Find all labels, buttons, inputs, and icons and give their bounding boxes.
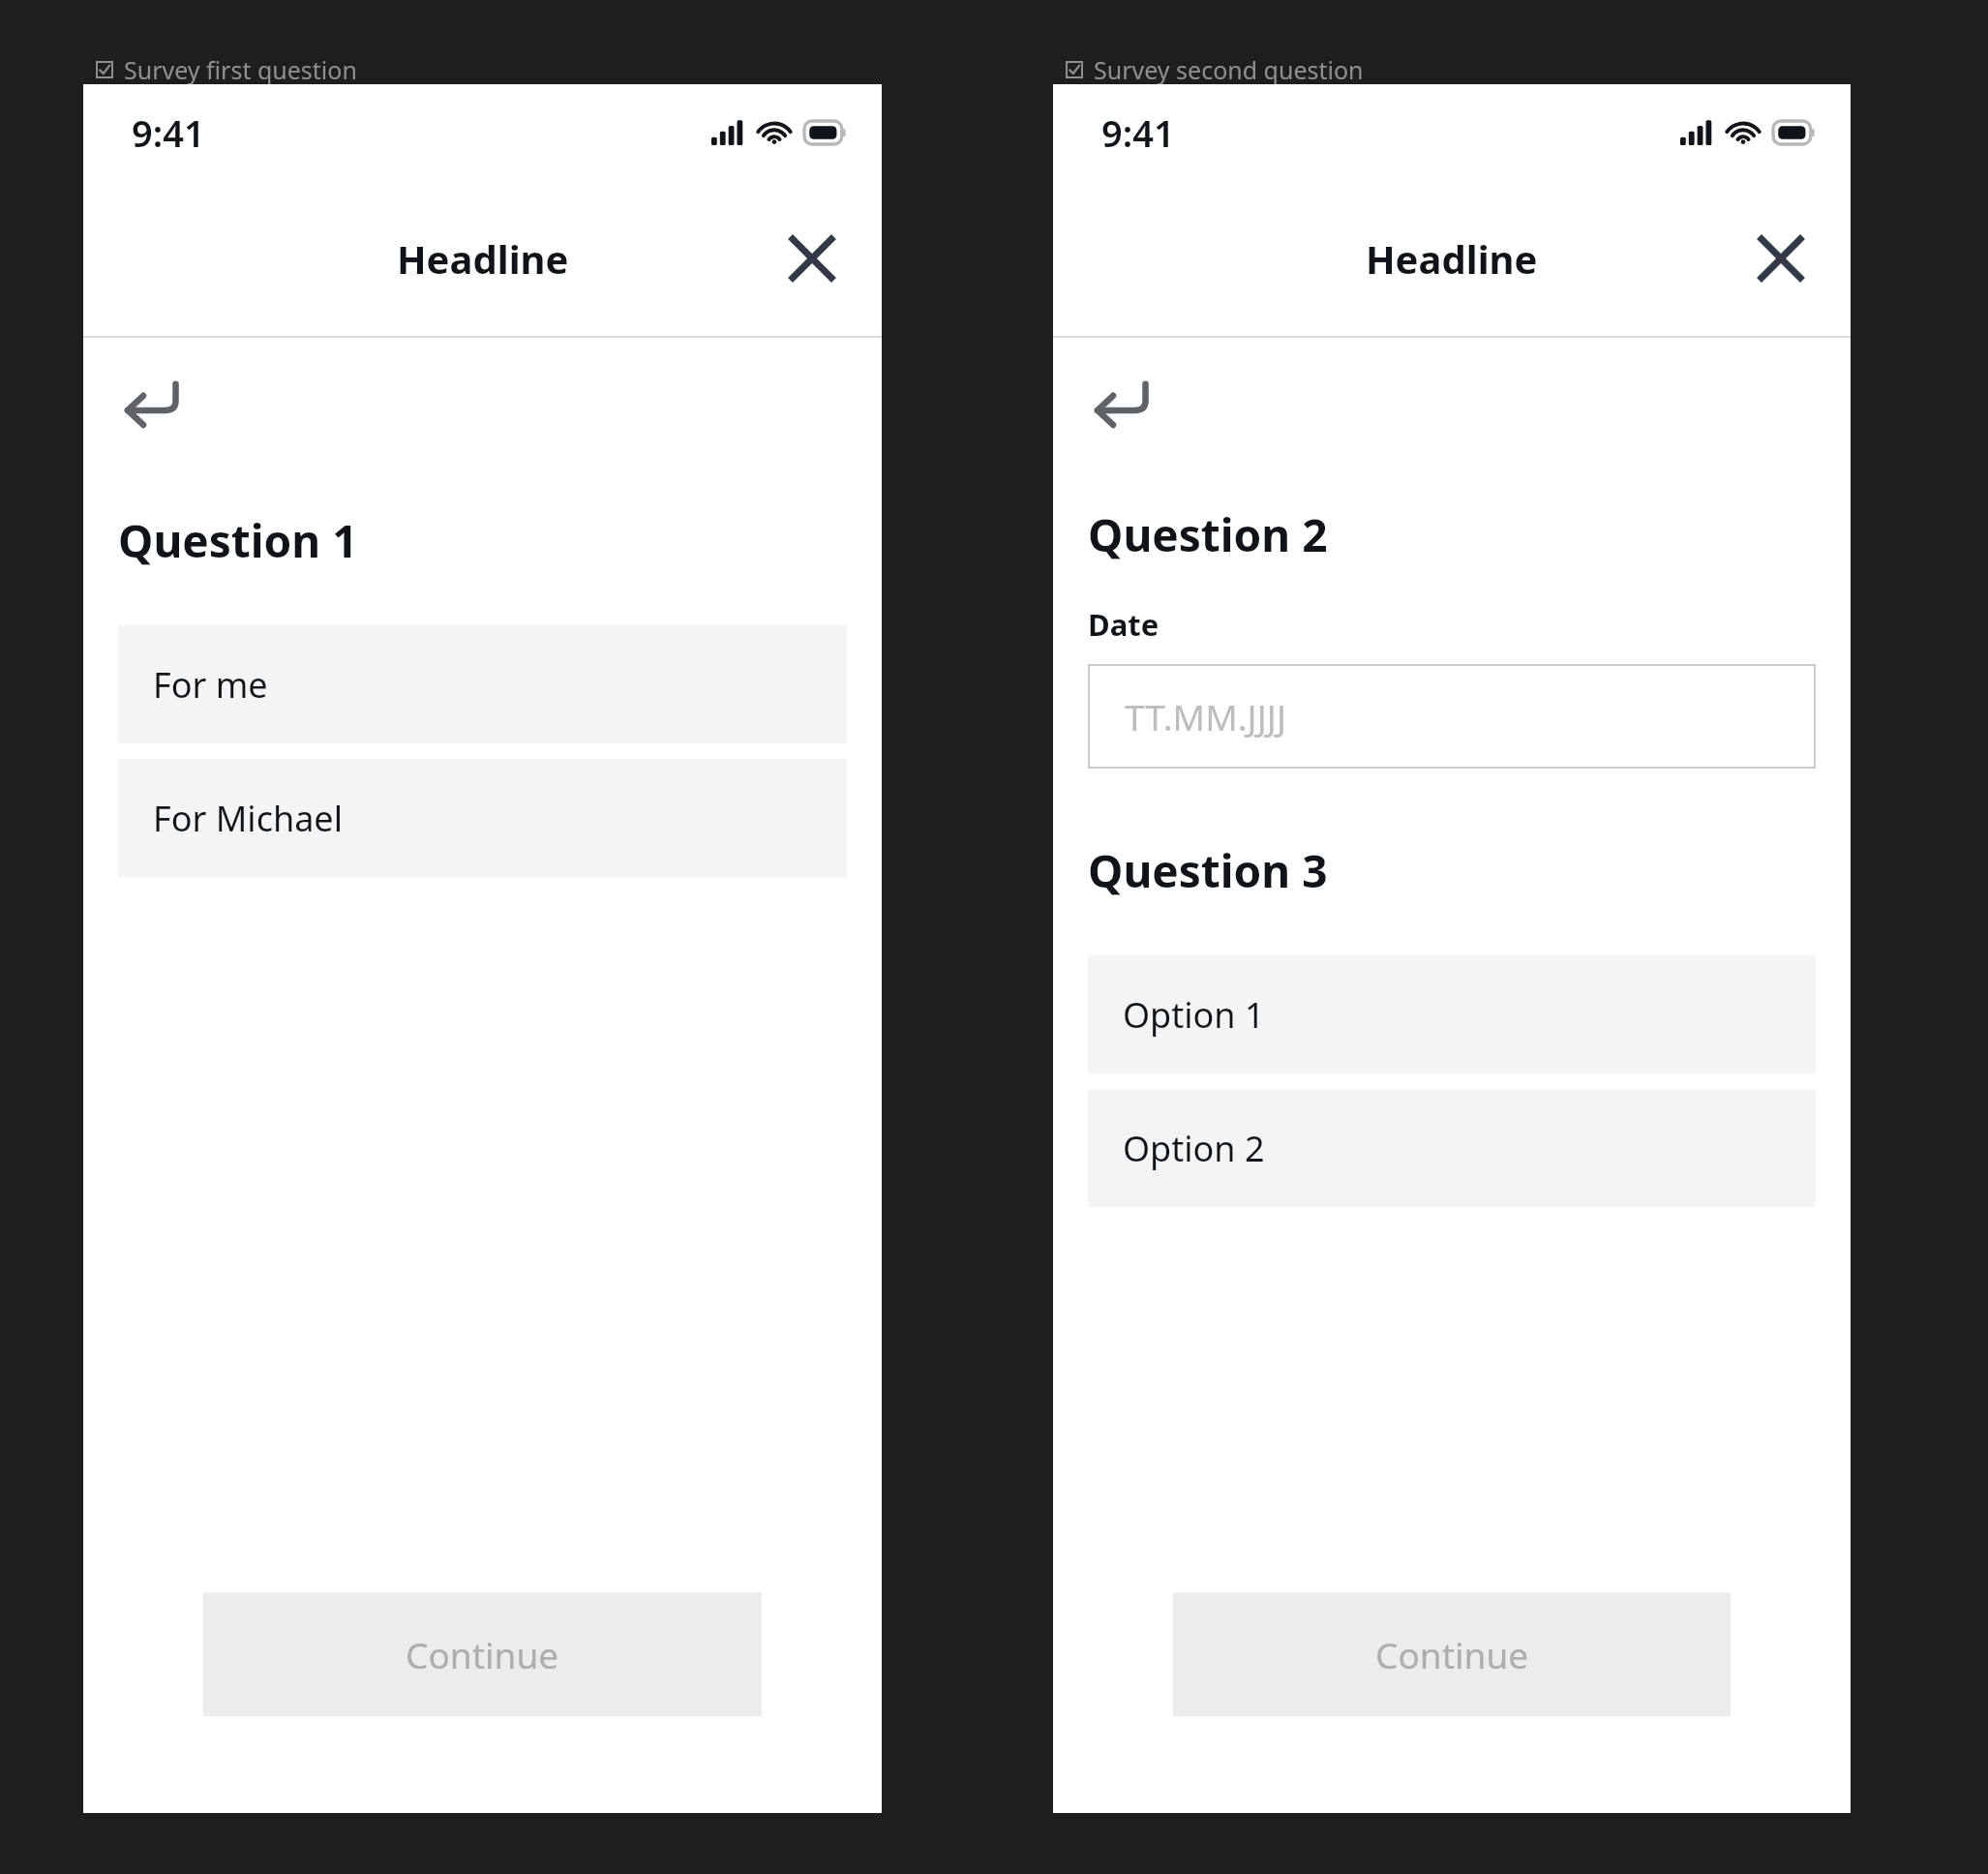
staticText: Question 1 <box>118 510 358 571</box>
button[interactable]: For Michael <box>118 759 847 877</box>
staticText: Survey second question <box>1094 53 1364 86</box>
button[interactable]: Back <box>118 371 205 444</box>
staticText: 9:41 <box>1101 107 1175 158</box>
staticText: For me <box>153 661 268 709</box>
staticText: TT.MM.JJJJ <box>1125 692 1287 741</box>
staticText: Date <box>1088 604 1160 645</box>
staticText: Headline <box>397 232 569 285</box>
button[interactable]: TT.MM.JJJJ <box>1088 664 1816 769</box>
staticText: Option 1 <box>1123 991 1265 1039</box>
button[interactable]: Close <box>771 218 853 299</box>
button[interactable]: Option 1 <box>1088 955 1816 1073</box>
staticText: Survey first question <box>124 53 357 86</box>
button[interactable]: Continue <box>1173 1592 1731 1716</box>
staticText: Continue <box>406 1630 559 1678</box>
staticText: For Michael <box>153 795 343 842</box>
staticText: Option 2 <box>1123 1125 1265 1172</box>
staticText: Question 3 <box>1088 840 1328 901</box>
button[interactable]: For me <box>118 625 847 743</box>
button[interactable]: Continue <box>203 1592 762 1716</box>
staticText: Continue <box>1375 1630 1529 1678</box>
staticText: 9:41 <box>132 107 205 158</box>
staticText: Headline <box>1366 232 1538 285</box>
button[interactable]: Back <box>1088 371 1175 444</box>
staticText: Question 2 <box>1088 504 1328 565</box>
button[interactable]: Close <box>1740 218 1822 299</box>
button[interactable]: Option 2 <box>1088 1089 1816 1207</box>
